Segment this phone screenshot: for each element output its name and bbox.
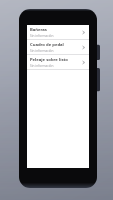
staticText: Cuadro de pedal [30, 42, 64, 48]
button[interactable]: Cuadro de pedal [27, 40, 89, 54]
button[interactable]: Peleaje sobre listo [27, 55, 89, 69]
other: Abrir [80, 56, 86, 69]
staticText: Sin información [30, 49, 54, 53]
button[interactable]: Bañeras [27, 25, 89, 39]
staticText: Sin información [30, 34, 54, 38]
staticText: Sin información [30, 64, 54, 68]
other: Abrir [80, 41, 86, 54]
staticText: Bañeras [30, 27, 47, 33]
staticText: Peleaje sobre listo [30, 57, 68, 63]
other: Abrir [80, 26, 86, 39]
